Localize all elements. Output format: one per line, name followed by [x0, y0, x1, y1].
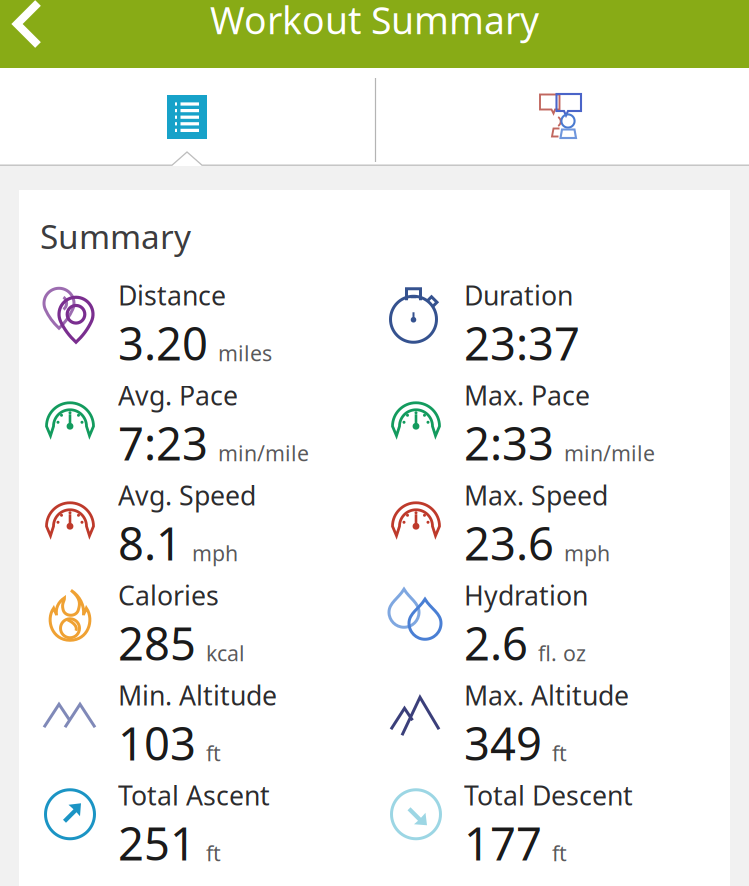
- staticText: Total Descent: [464, 777, 633, 813]
- staticText: min/mile: [218, 439, 309, 467]
- staticText: 23.6: [464, 513, 554, 573]
- staticText: Max. Pace: [464, 377, 590, 413]
- staticText: min/mile: [564, 439, 655, 467]
- staticText: ft: [206, 839, 221, 867]
- staticText: ft: [552, 839, 567, 867]
- staticText: mph: [564, 539, 610, 567]
- staticText: ft: [552, 739, 567, 767]
- staticText: fl. oz: [538, 639, 586, 667]
- staticText: Calories: [118, 577, 219, 613]
- staticText: 177: [464, 813, 542, 873]
- staticText: 8.1: [118, 513, 182, 573]
- staticText: 103: [118, 713, 196, 773]
- button[interactable]: Summary tab: [0, 68, 374, 166]
- staticText: Max. Speed: [464, 477, 608, 513]
- staticText: 285: [118, 613, 196, 673]
- staticText: Avg. Pace: [118, 377, 238, 413]
- staticText: 251: [118, 813, 196, 873]
- staticText: Hydration: [464, 577, 588, 613]
- staticText: mph: [192, 539, 238, 567]
- staticText: 2:33: [464, 413, 554, 473]
- staticText: 2.6: [464, 613, 528, 673]
- staticText: Max. Altitude: [464, 677, 629, 713]
- staticText: Min. Altitude: [118, 677, 277, 713]
- staticText: ft: [206, 739, 221, 767]
- staticText: Distance: [118, 277, 226, 313]
- staticText: Avg. Speed: [118, 477, 256, 513]
- staticText: Duration: [464, 277, 573, 313]
- staticText: Summary: [40, 214, 191, 258]
- staticText: Workout Summary: [210, 0, 539, 45]
- staticText: miles: [218, 339, 272, 367]
- staticText: kcal: [206, 639, 245, 667]
- staticText: 7:23: [118, 413, 208, 473]
- button[interactable]: Back: [0, 0, 72, 68]
- staticText: 349: [464, 713, 542, 773]
- button[interactable]: Social tab: [374, 68, 749, 166]
- staticText: Total Ascent: [118, 777, 270, 813]
- staticText: 23:37: [464, 313, 580, 373]
- staticText: 3.20: [118, 313, 208, 373]
